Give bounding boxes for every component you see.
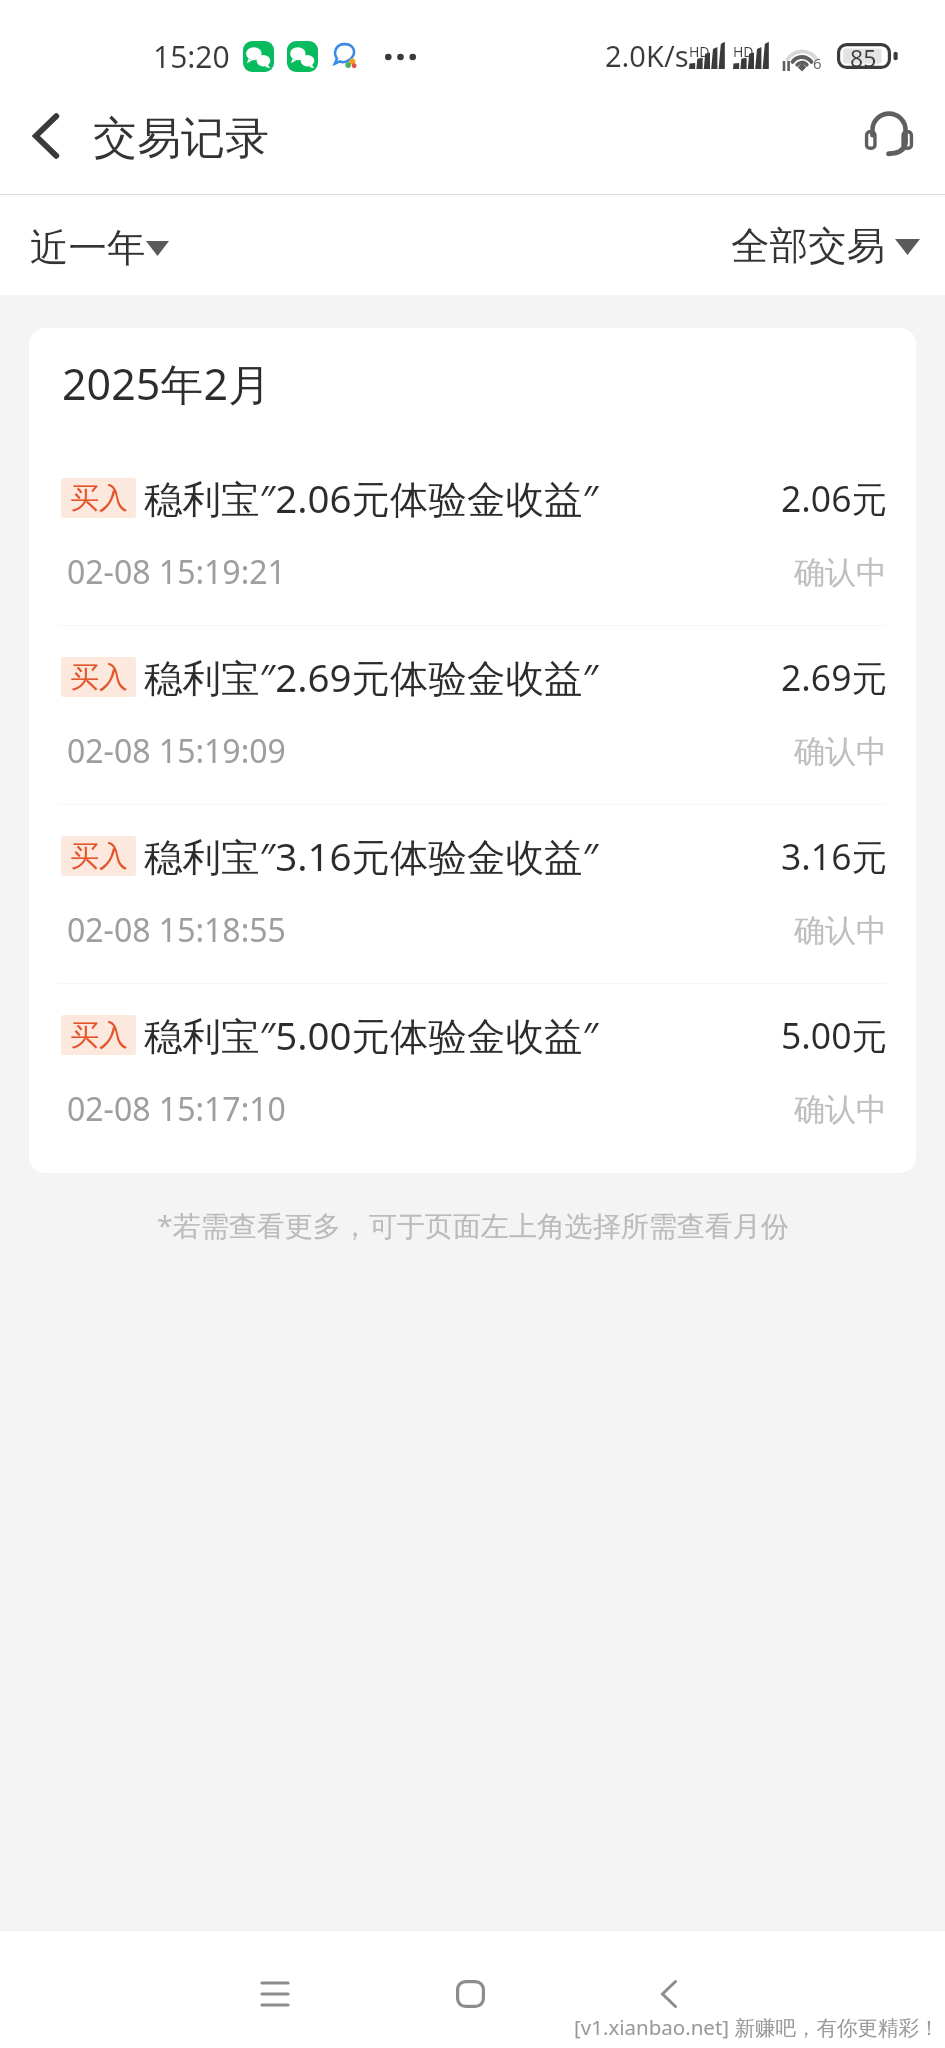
staticText: 02-08 15:19:09: [67, 729, 286, 773]
staticText: 确认中: [794, 911, 887, 950]
staticText: 买入: [70, 659, 128, 696]
staticText: 稳利宝″2.69元体验金收益″: [144, 651, 599, 704]
staticText: 02-08 15:19:21: [67, 550, 286, 594]
button[interactable]: 近一年: [0, 224, 181, 273]
button[interactable]: 全部交易: [719, 222, 945, 271]
staticText: 买入: [70, 480, 128, 517]
button[interactable]: 买入: [29, 984, 916, 1162]
staticText: HD: [689, 42, 710, 61]
staticText: 确认中: [794, 1090, 887, 1129]
staticText: 交易记录: [93, 111, 269, 166]
staticText: 稳利宝″2.06元体验金收益″: [144, 472, 599, 525]
staticText: 稳利宝″3.16元体验金收益″: [144, 830, 599, 883]
staticText: 2025年2月: [62, 354, 271, 413]
staticText: 确认中: [794, 553, 887, 592]
button[interactable]: 买入: [29, 805, 916, 983]
staticText: 5.00元: [781, 1011, 887, 1059]
staticText: 近一年: [30, 224, 146, 273]
staticText: [v1.xianbao.net] 新赚吧，有你更精彩！: [574, 2013, 940, 2041]
staticText: 85: [850, 42, 877, 68]
staticText: 确认中: [794, 732, 887, 771]
staticText: *若需查看更多，可于页面左上角选择所需查看月份: [157, 1206, 789, 1244]
staticText: 15:20: [153, 36, 230, 77]
button[interactable]: 买入: [29, 447, 916, 625]
button[interactable]: Customer service: [865, 110, 913, 158]
staticText: 2.06元: [781, 474, 887, 522]
button[interactable]: Home: [425, 1949, 515, 2038]
staticText: 2.0K/s: [605, 36, 689, 75]
staticText: 02-08 15:17:10: [67, 1087, 286, 1131]
staticText: 3.16元: [781, 832, 887, 880]
staticText: 稳利宝″5.00元体验金收益″: [144, 1009, 599, 1062]
staticText: 买入: [70, 838, 128, 875]
staticText: 全部交易: [731, 222, 885, 271]
staticText: 6: [813, 53, 822, 73]
button[interactable]: Back: [624, 1949, 714, 2038]
button[interactable]: 买入: [29, 626, 916, 804]
staticText: 02-08 15:18:55: [67, 908, 286, 952]
button[interactable]: Recent apps: [230, 1949, 320, 2038]
staticText: 买入: [70, 1017, 128, 1054]
staticText: 2.69元: [781, 653, 887, 701]
button[interactable]: Back: [16, 104, 80, 168]
staticText: HD: [733, 42, 754, 61]
